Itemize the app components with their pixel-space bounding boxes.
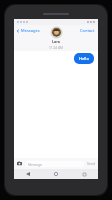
button[interactable]: Back — [14, 169, 42, 179]
staticText: Hello — [79, 56, 89, 61]
button[interactable]: Recent apps — [70, 169, 98, 179]
button[interactable]: Message — [25, 161, 84, 167]
button[interactable]: Contact — [77, 27, 98, 34]
button[interactable]: Home — [42, 169, 70, 179]
button[interactable]: Send — [86, 160, 96, 167]
button[interactable]: Contact profile — [49, 27, 63, 50]
button[interactable]: Camera — [16, 160, 23, 167]
staticText: 11:24 AM — [49, 46, 63, 50]
staticText: Message — [28, 162, 43, 167]
staticText: Send — [87, 161, 95, 166]
staticText: Lara — [52, 39, 60, 44]
staticText: Contact — [80, 28, 95, 33]
button[interactable]: Messages — [14, 27, 42, 34]
staticText: Messages — [21, 28, 40, 33]
button[interactable]: Hello — [74, 53, 94, 64]
